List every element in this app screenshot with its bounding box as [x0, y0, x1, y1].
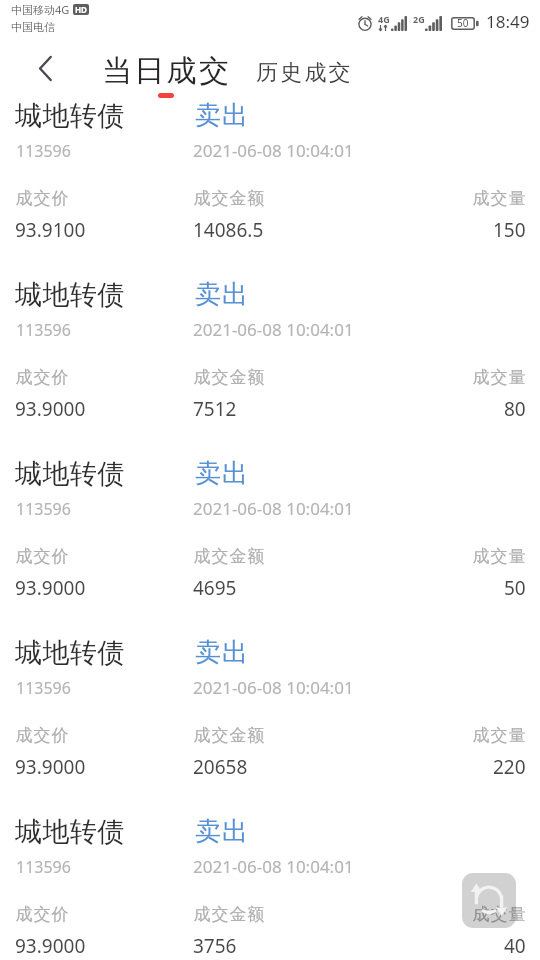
- staticText: 14086.5: [193, 217, 264, 243]
- staticText: 80: [504, 396, 526, 422]
- button[interactable]: 当日成交: [94, 45, 236, 100]
- staticText: 4G: [378, 13, 390, 25]
- staticText: HD: [75, 4, 87, 15]
- staticText: 城地转债: [15, 457, 125, 491]
- staticText: 成交量: [472, 188, 526, 209]
- staticText: 成交量: [472, 725, 526, 746]
- staticText: 50: [504, 575, 526, 601]
- staticText: 2021-06-08 10:04:01: [193, 139, 354, 162]
- staticText: 卖出: [195, 278, 249, 311]
- staticText: 城地转债: [15, 815, 125, 849]
- staticText: 当日成交: [102, 52, 232, 90]
- staticText: 2021-06-08 10:04:01: [193, 318, 354, 341]
- staticText: 卖出: [195, 636, 249, 669]
- staticText: 93.9000: [15, 575, 86, 601]
- staticText: 40: [504, 933, 526, 959]
- staticText: 150: [493, 217, 526, 243]
- button[interactable]: 历史成交: [246, 48, 360, 94]
- button[interactable]: 城地转债: [0, 457, 540, 636]
- staticText: 历史成交: [256, 59, 353, 87]
- staticText: 中国电信: [11, 20, 55, 34]
- staticText: 卖出: [195, 815, 249, 848]
- staticText: 4695: [193, 575, 237, 601]
- staticText: 城地转债: [15, 636, 125, 670]
- staticText: 113596: [16, 319, 71, 341]
- staticText: 成交量: [472, 546, 526, 567]
- staticText: 2021-06-08 10:04:01: [193, 497, 354, 520]
- staticText: 城地转债: [15, 99, 125, 133]
- staticText: 卖出: [195, 99, 249, 132]
- staticText: 93.9000: [15, 396, 86, 422]
- staticText: 成交金额: [193, 904, 265, 925]
- staticText: 城地转债: [15, 278, 125, 312]
- staticText: 113596: [16, 498, 71, 520]
- staticText: 93.9100: [15, 217, 86, 243]
- staticText: 成交金额: [193, 546, 265, 567]
- staticText: 2021-06-08 10:04:01: [193, 855, 354, 878]
- staticText: 成交价: [15, 904, 69, 925]
- staticText: 成交金额: [193, 367, 265, 388]
- button[interactable]: 城地转债: [0, 636, 540, 815]
- staticText: 113596: [16, 856, 71, 878]
- staticText: 7512: [193, 396, 237, 422]
- button[interactable]: 城地转债: [0, 278, 540, 457]
- staticText: 93.9000: [15, 754, 86, 780]
- staticText: 2021-06-08 10:04:01: [193, 676, 354, 699]
- staticText: 18:49: [486, 10, 530, 33]
- staticText: 成交金额: [193, 188, 265, 209]
- button[interactable]: Refresh: [462, 873, 516, 928]
- staticText: 成交价: [15, 367, 69, 388]
- staticText: 成交价: [15, 188, 69, 209]
- staticText: 成交量: [472, 367, 526, 388]
- button[interactable]: 城地转债: [0, 815, 540, 960]
- staticText: 成交量: [472, 904, 526, 925]
- staticText: 50: [457, 16, 469, 30]
- staticText: 20658: [193, 754, 248, 780]
- staticText: 中国移动4G: [11, 2, 70, 17]
- staticText: 卖出: [195, 457, 249, 490]
- staticText: 成交金额: [193, 725, 265, 746]
- staticText: 2G: [413, 13, 425, 25]
- staticText: 113596: [16, 677, 71, 699]
- staticText: 93.9000: [15, 933, 86, 959]
- button[interactable]: Back: [22, 45, 68, 91]
- staticText: 3756: [193, 933, 237, 959]
- button[interactable]: 城地转债: [0, 99, 540, 278]
- staticText: 220: [493, 754, 526, 780]
- staticText: 113596: [16, 140, 71, 162]
- staticText: 成交价: [15, 546, 69, 567]
- staticText: 成交价: [15, 725, 69, 746]
